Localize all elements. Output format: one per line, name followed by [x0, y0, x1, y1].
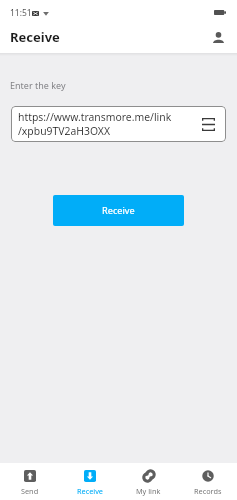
- staticText: 11:51: [10, 7, 32, 19]
- button[interactable]: Receive: [53, 195, 184, 226]
- staticText: Records: [194, 486, 222, 496]
- staticText: My link: [136, 486, 161, 496]
- staticText: Receive: [10, 28, 60, 46]
- button[interactable]: My link: [119, 463, 178, 500]
- staticText: Enter the key: [10, 79, 66, 91]
- staticText: /xpbu9TV2aH3OXX: [18, 124, 111, 138]
- button[interactable]: Receive: [60, 463, 119, 500]
- button[interactable]: Account: [207, 26, 229, 48]
- button[interactable]: Scan QR code: [201, 117, 215, 131]
- staticText: Receive: [77, 486, 103, 496]
- button[interactable]: https://www.transmore.me/link: [11, 106, 226, 142]
- staticText: Send: [21, 486, 39, 496]
- staticText: Receive: [102, 204, 135, 217]
- button[interactable]: Records: [178, 463, 237, 500]
- button[interactable]: Send: [0, 463, 60, 500]
- staticText: https://www.transmore.me/link: [18, 110, 172, 124]
